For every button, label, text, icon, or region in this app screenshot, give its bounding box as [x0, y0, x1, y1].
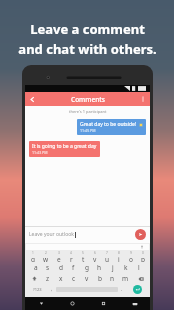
button[interactable]: j	[106, 262, 119, 273]
button[interactable]: 8	[113, 251, 125, 262]
staticText: a	[34, 263, 38, 272]
button[interactable]: 2	[39, 251, 52, 262]
staticText: 11:45 PM	[80, 128, 96, 133]
button[interactable]: Shift	[26, 273, 42, 284]
staticText: 7	[106, 251, 108, 255]
staticText: o	[129, 255, 133, 262]
staticText: z	[46, 274, 50, 283]
staticText: c	[72, 274, 76, 283]
button[interactable]: Back	[25, 92, 39, 106]
staticText: f	[72, 263, 75, 272]
button[interactable]: 5	[77, 251, 89, 262]
staticText: and chat with others.	[18, 40, 157, 58]
staticText: 4	[70, 251, 72, 255]
button[interactable]: 6	[89, 251, 101, 262]
staticText: y	[93, 255, 97, 262]
staticText: x	[59, 274, 63, 283]
staticText: there's 1 participant	[69, 109, 107, 114]
button[interactable]: d	[54, 262, 67, 273]
button[interactable]: a	[30, 262, 42, 273]
button[interactable]: c	[67, 273, 80, 284]
button[interactable]: 4	[65, 251, 77, 262]
staticText: It is going to be a great day	[32, 143, 97, 150]
staticText: b	[98, 274, 102, 283]
button[interactable]: ?123	[27, 284, 48, 295]
staticText: m	[122, 274, 129, 283]
staticText: Comments	[71, 95, 105, 104]
button[interactable]: Home	[57, 297, 88, 310]
staticText: Leave a comment	[30, 20, 145, 38]
button[interactable]: Voice input	[139, 244, 145, 250]
button[interactable]: .	[118, 284, 126, 295]
button[interactable]: k	[119, 262, 132, 273]
button[interactable]: Back	[25, 297, 57, 310]
staticText: e	[57, 255, 61, 262]
button[interactable]: l	[132, 262, 145, 273]
button[interactable]: Recents	[88, 297, 119, 310]
button[interactable]: x	[54, 273, 67, 284]
staticText: 9	[130, 251, 132, 255]
staticText: t	[82, 255, 85, 262]
staticText: u	[105, 255, 110, 262]
staticText: ?123	[33, 287, 42, 292]
staticText: ,	[51, 286, 53, 293]
staticText: 8	[118, 251, 120, 255]
staticText: .	[121, 286, 123, 293]
staticText: 3	[58, 251, 60, 255]
button[interactable]: m	[119, 273, 132, 284]
button[interactable]: z	[42, 273, 54, 284]
staticText: v	[85, 274, 89, 283]
button[interactable]: 9	[125, 251, 137, 262]
button[interactable]: b	[93, 273, 106, 284]
staticText: s	[46, 263, 50, 272]
staticText: l	[138, 263, 140, 272]
staticText: i	[118, 255, 120, 262]
staticText: p	[141, 255, 145, 262]
button[interactable]: 0	[137, 251, 149, 262]
button[interactable]: s	[42, 262, 54, 273]
staticText: q	[31, 255, 35, 262]
button[interactable]: 3	[52, 251, 65, 262]
button[interactable]: n	[106, 273, 119, 284]
staticText: w	[43, 255, 49, 262]
staticText: 1	[32, 251, 34, 255]
staticText: 6	[94, 251, 96, 255]
button[interactable]: 1	[26, 251, 39, 262]
staticText: j	[112, 263, 114, 272]
button[interactable]: ,	[48, 284, 56, 295]
button[interactable]: 7	[101, 251, 113, 262]
button[interactable]: f	[67, 262, 80, 273]
staticText: r	[70, 255, 73, 262]
button[interactable]: Backspace	[132, 273, 149, 284]
button[interactable]: h	[93, 262, 106, 273]
staticText: h	[97, 263, 102, 272]
staticText: k	[124, 263, 128, 272]
staticText: Great day to be outside!	[80, 121, 137, 128]
staticText: d	[59, 263, 63, 272]
button[interactable]: Leave your outlook	[29, 231, 135, 238]
button[interactable]: Enter	[133, 285, 142, 294]
button[interactable]: g	[80, 262, 93, 273]
staticText: 0	[142, 251, 144, 255]
staticText: n	[110, 274, 115, 283]
staticText: 5	[82, 251, 84, 255]
button[interactable]: More options	[136, 92, 150, 106]
button[interactable]: v	[80, 273, 93, 284]
staticText: 11:43 PM	[32, 150, 48, 155]
button[interactable]: Send	[135, 229, 146, 240]
staticText: g	[85, 263, 89, 272]
button[interactable]: Great day to be outside!	[77, 119, 146, 135]
staticText: Leave your outlook	[29, 231, 74, 238]
staticText: 2	[45, 251, 47, 255]
button[interactable]: It is going to be a great day	[29, 141, 100, 157]
button[interactable]: Hide keyboard	[119, 297, 150, 310]
